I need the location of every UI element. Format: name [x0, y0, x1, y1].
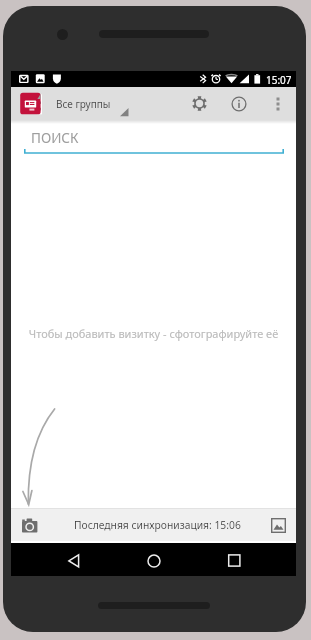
staticText: Все группы [56, 97, 111, 111]
button[interactable]: Все группы [51, 87, 151, 120]
button[interactable]: Recent apps [217, 544, 251, 577]
button[interactable]: ПОИСК [11, 129, 296, 161]
button[interactable]: App icon [16, 87, 301, 120]
button[interactable]: Information [222, 87, 255, 120]
button[interactable]: More options [261, 87, 294, 120]
staticText: Последняя синхронизация: 15:06 [74, 518, 241, 532]
button[interactable]: Take photo [15, 508, 45, 542]
staticText: 15:07 [266, 73, 292, 87]
button[interactable]: Settings [183, 87, 216, 120]
button[interactable]: Home [137, 544, 171, 577]
staticText: Чтобы добавить визитку - сфотографируйте… [11, 326, 296, 341]
button[interactable]: Back [57, 544, 91, 577]
button[interactable]: Gallery [263, 508, 293, 542]
staticText: ПОИСК [31, 129, 79, 147]
